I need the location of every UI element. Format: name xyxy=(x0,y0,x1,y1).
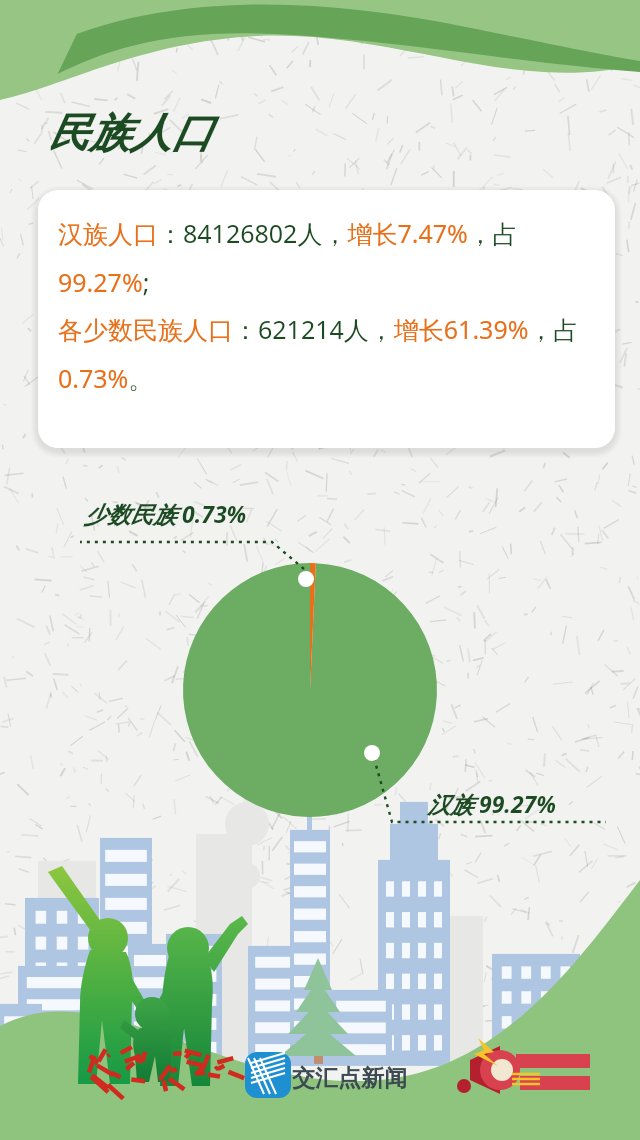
button[interactable]: 民族人口信息图 xyxy=(0,0,640,1140)
